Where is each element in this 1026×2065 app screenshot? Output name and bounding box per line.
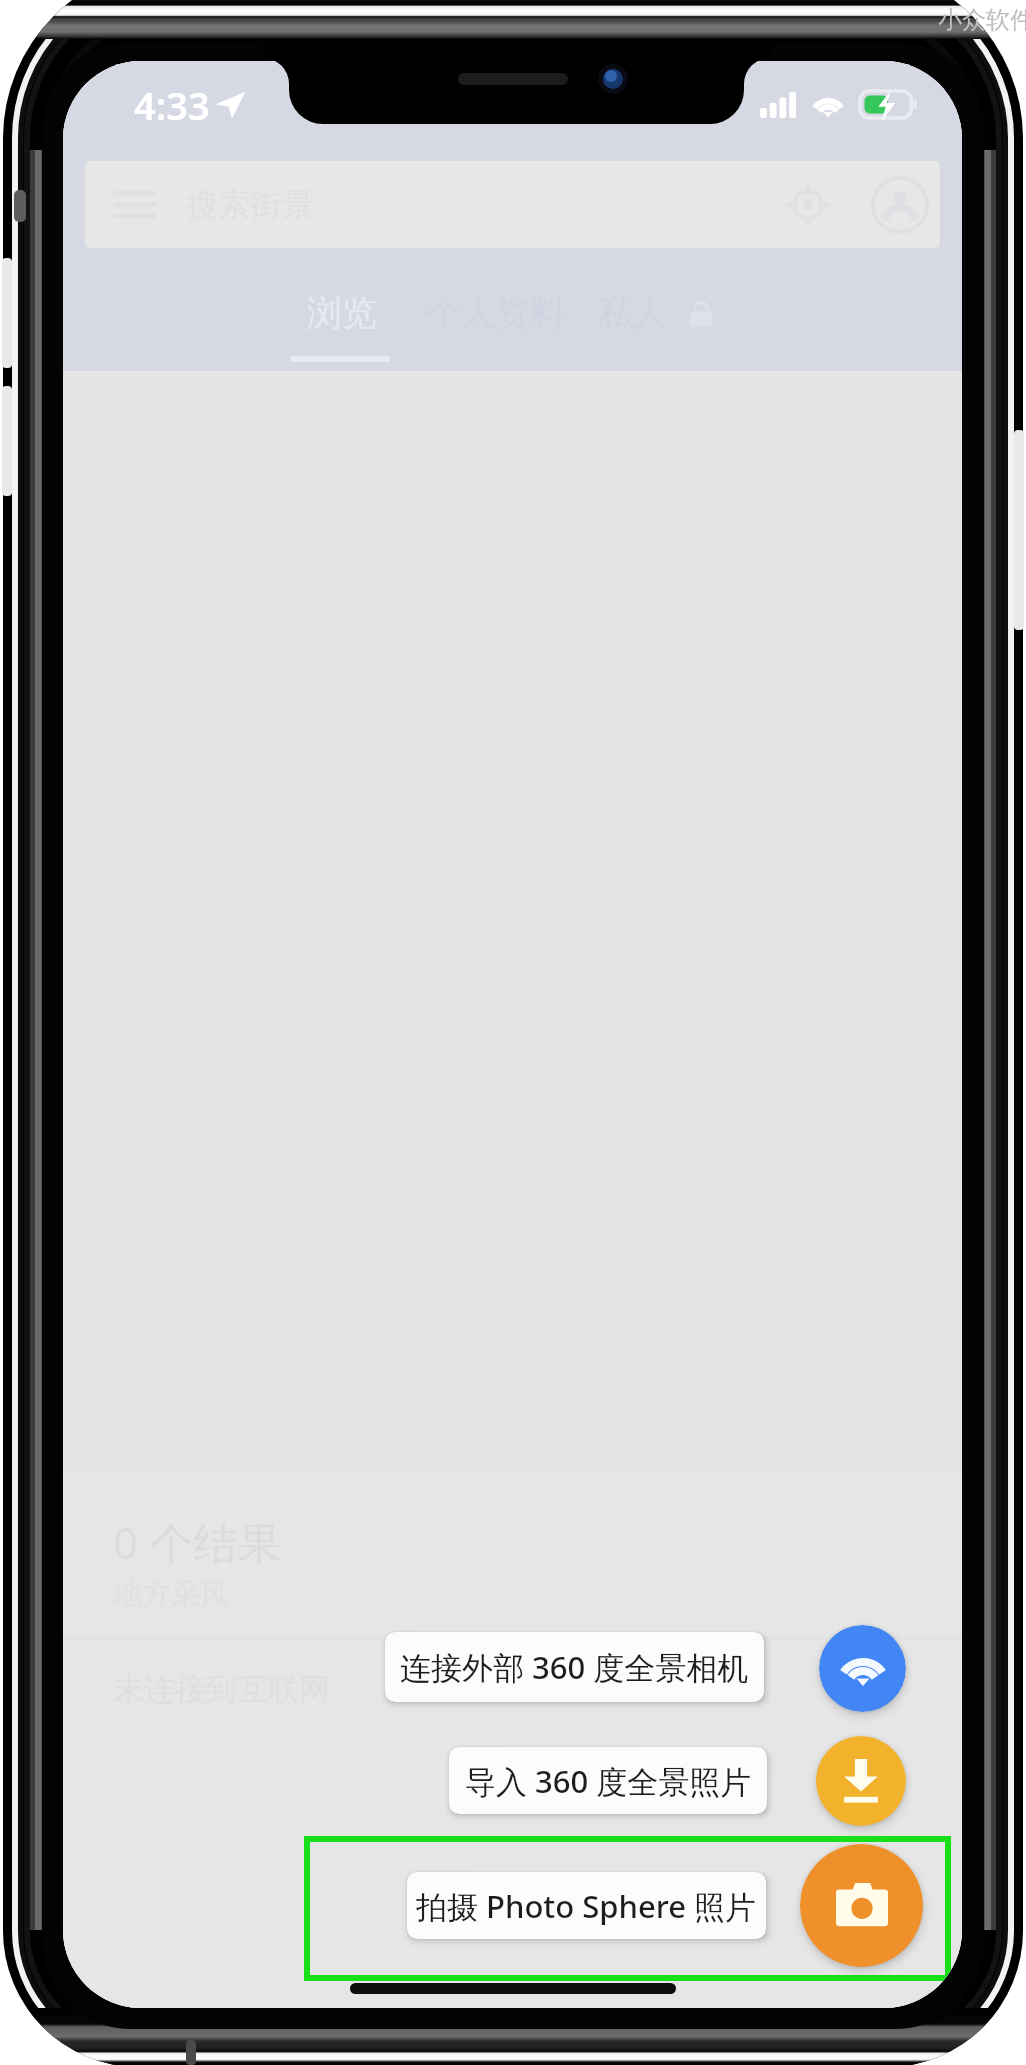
other: Menu xyxy=(113,191,156,219)
staticText: 0 个结果 xyxy=(113,1512,282,1572)
button[interactable]: 连接外部 360 度全景相机 xyxy=(819,1625,906,1712)
button[interactable]: 导入 360 度全景照片 xyxy=(816,1736,906,1826)
staticText: 小众软件 xyxy=(938,5,1026,35)
staticText: 导入 360 度全景照片 xyxy=(465,1760,752,1802)
button[interactable]: 导入 360 度全景照片 xyxy=(449,1747,767,1814)
button[interactable]: 拍摄 Photo Sphere 照片 xyxy=(800,1844,923,1967)
button[interactable]: 浏览 xyxy=(293,287,391,339)
button[interactable]: 拍摄 Photo Sphere 照片 xyxy=(407,1872,766,1939)
staticText: 4:33 xyxy=(134,79,210,131)
staticText: 浏览 xyxy=(307,291,377,335)
staticText: 连接外部 360 度全景相机 xyxy=(400,1646,749,1688)
staticText: 拍摄 Photo Sphere 照片 xyxy=(416,1885,757,1927)
button[interactable]: 连接外部 360 度全景相机 xyxy=(385,1632,764,1702)
